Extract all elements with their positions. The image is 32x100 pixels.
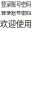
staticText: 登录账号密码	[1, 9, 31, 16]
staticText: 欢迎使用	[0, 17, 32, 29]
staticText: 登录账号密码	[1, 0, 31, 8]
